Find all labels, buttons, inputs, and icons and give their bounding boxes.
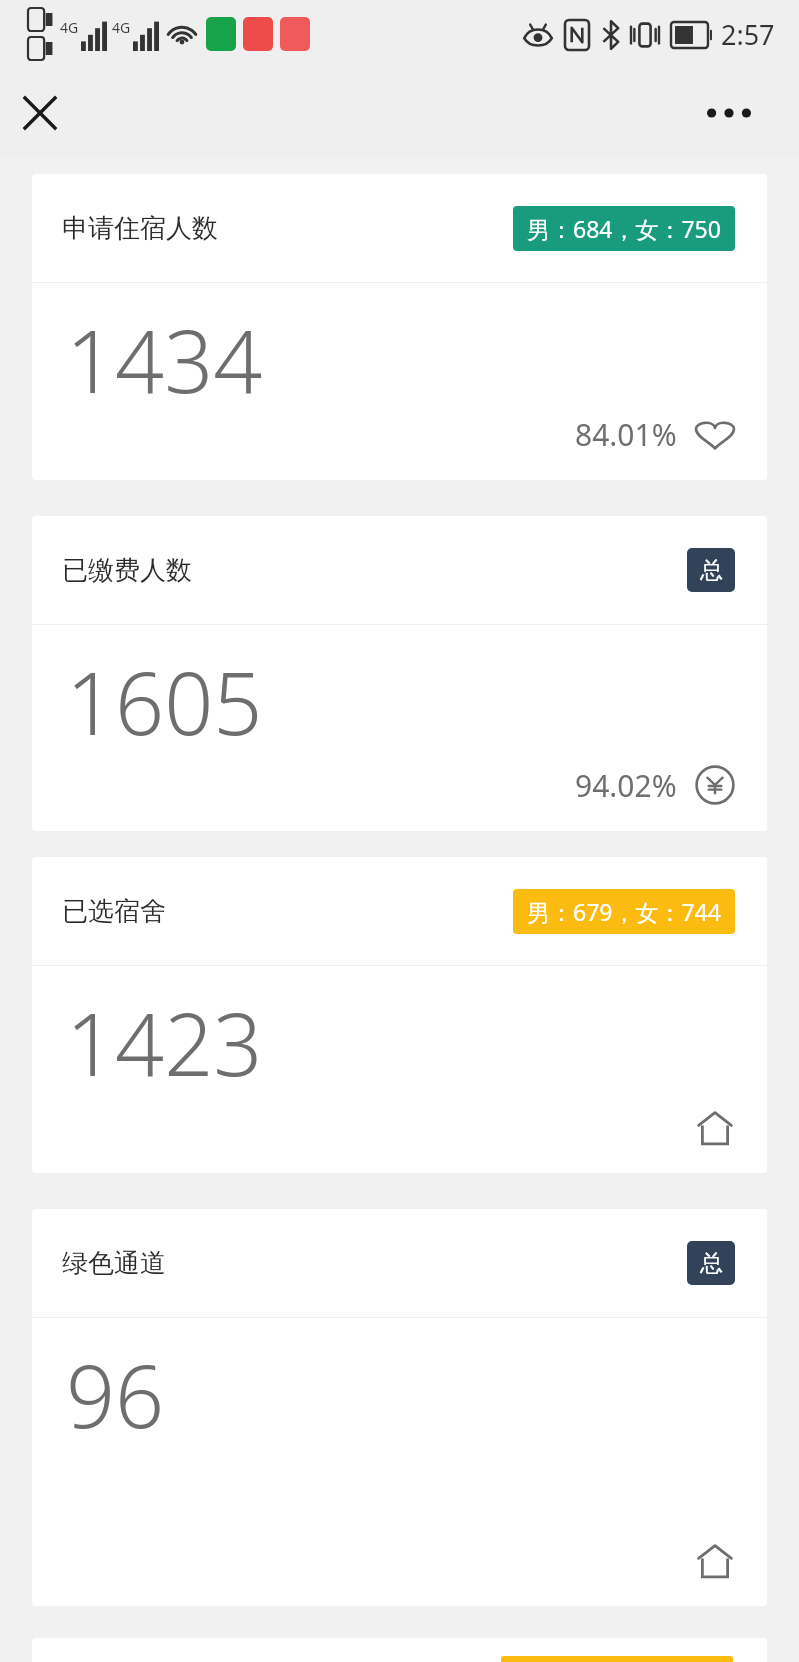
- staticText: 1605: [66, 643, 263, 760]
- button[interactable]: 申请住宿人数: [32, 174, 767, 480]
- button[interactable]: Dormitory: [693, 1105, 737, 1149]
- button[interactable]: Close: [12, 85, 68, 141]
- button[interactable]: 总: [687, 548, 735, 592]
- button[interactable]: 男：679，女：744: [513, 889, 735, 934]
- staticText: 94.02%: [575, 765, 677, 806]
- button[interactable]: 总: [687, 1241, 735, 1285]
- button[interactable]: 男：684，女：750: [513, 206, 735, 251]
- button[interactable]: Favorite: [693, 412, 737, 456]
- staticText: 1434: [66, 301, 263, 418]
- button[interactable]: More options: [701, 85, 757, 141]
- staticText: 申请住宿人数: [62, 212, 218, 245]
- staticText: 男：684，女：750: [527, 213, 721, 244]
- staticText: 男：679，女：744: [527, 896, 721, 927]
- staticText: 绿色通道: [62, 1247, 166, 1280]
- staticText: 4G: [60, 18, 79, 37]
- button[interactable]: 绿色通道: [32, 1209, 767, 1606]
- staticText: 已选宿舍: [62, 895, 166, 928]
- staticText: 84.01%: [575, 414, 677, 455]
- button[interactable]: [32, 1638, 767, 1662]
- staticText: 2:57: [721, 16, 775, 53]
- staticText: 已缴费人数: [62, 554, 192, 587]
- button[interactable]: Dormitory: [693, 1538, 737, 1582]
- staticText: 1423: [66, 984, 263, 1101]
- staticText: 4G: [112, 18, 131, 37]
- staticText: 总: [700, 556, 723, 585]
- staticText: 总: [700, 1249, 723, 1278]
- button[interactable]: 已缴费人数: [32, 516, 767, 831]
- button[interactable]: Payment: [693, 763, 737, 807]
- button[interactable]: 已选宿舍: [32, 857, 767, 1173]
- staticText: 96: [66, 1336, 165, 1453]
